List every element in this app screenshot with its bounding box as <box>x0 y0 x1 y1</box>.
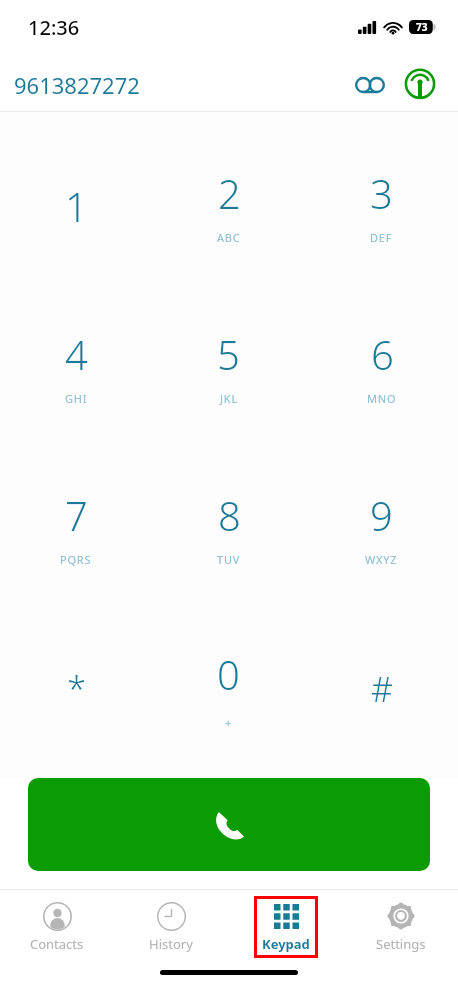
button[interactable]: 5 <box>152 295 305 456</box>
staticText: 9613827272 <box>14 70 140 100</box>
button[interactable]: 0 <box>152 617 305 778</box>
button[interactable]: History <box>139 896 203 958</box>
button[interactable]: * <box>0 617 152 778</box>
staticText: 7 <box>65 488 88 542</box>
staticText: 12:36 <box>28 14 80 41</box>
button[interactable]: Broadcast <box>398 63 442 107</box>
button[interactable]: Voicemail <box>348 63 392 107</box>
button[interactable]: 7 <box>0 456 152 617</box>
staticText: MNO <box>367 391 397 406</box>
button[interactable]: 3 <box>305 134 458 295</box>
staticText: 2 <box>218 166 241 220</box>
button[interactable]: # <box>305 617 458 778</box>
staticText: 0 <box>217 647 240 701</box>
button[interactable]: 9 <box>305 456 458 617</box>
staticText: TUV <box>217 552 241 567</box>
staticText: + <box>225 715 232 730</box>
button[interactable]: 1 <box>0 134 152 295</box>
staticText: DEF <box>370 230 393 245</box>
button[interactable]: Settings <box>366 896 436 958</box>
staticText: History <box>149 935 193 953</box>
button[interactable]: 2 <box>152 134 305 295</box>
staticText: WXYZ <box>365 552 398 567</box>
staticText: 4 <box>65 327 88 381</box>
button[interactable]: 6 <box>305 295 458 456</box>
staticText: 6 <box>371 327 394 381</box>
button[interactable]: Contacts <box>20 896 94 958</box>
staticText: Keypad <box>262 935 310 953</box>
staticText: 1 <box>65 179 88 233</box>
button[interactable]: Keypad <box>254 896 318 958</box>
staticText: # <box>371 666 393 712</box>
staticText: 73 <box>416 20 428 34</box>
staticText: Settings <box>376 935 426 953</box>
staticText: JKL <box>220 391 238 406</box>
staticText: ABC <box>217 230 241 245</box>
button[interactable]: 4 <box>0 295 152 456</box>
staticText: 9 <box>370 488 393 542</box>
staticText: 5 <box>217 327 240 381</box>
staticText: Contacts <box>30 935 84 953</box>
staticText: PQRS <box>60 552 92 567</box>
button[interactable]: 8 <box>152 456 305 617</box>
staticText: * <box>67 666 86 712</box>
staticText: GHI <box>65 391 88 406</box>
button[interactable]: Call <box>28 778 430 871</box>
staticText: 3 <box>370 166 393 220</box>
staticText: 8 <box>218 488 241 542</box>
